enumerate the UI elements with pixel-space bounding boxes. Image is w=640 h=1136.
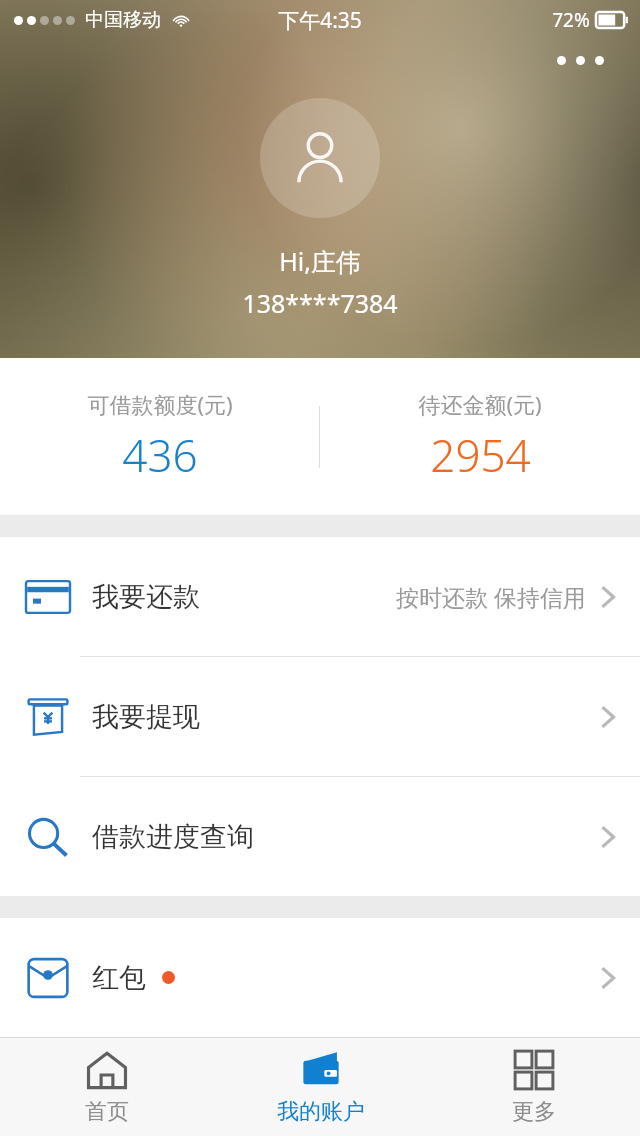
button[interactable]: 借款进度查询 [0, 777, 640, 896]
button[interactable]: 红包 [0, 918, 640, 1037]
button[interactable]: 首页 [0, 1038, 214, 1136]
staticText: 更多 [512, 1098, 556, 1126]
staticText: 我的账户 [277, 1098, 365, 1126]
staticText: 138****7384 [242, 286, 398, 320]
staticText: 我要还款 [92, 580, 200, 614]
button[interactable]: 我的账户 [214, 1038, 427, 1136]
staticText: 我要提现 [92, 700, 200, 734]
staticText: 借款进度查询 [92, 820, 254, 854]
staticText: 首页 [85, 1098, 129, 1126]
button[interactable]: More options [549, 48, 612, 73]
button[interactable]: 待还金额(元) [320, 381, 640, 493]
staticText: 按时还款 保持信用 [396, 581, 586, 612]
staticText: 436 [122, 425, 198, 485]
button[interactable]: 可借款额度(元) [0, 381, 319, 493]
staticText: 可借款额度(元) [87, 389, 233, 419]
staticText: 72% [552, 7, 590, 33]
staticText: 红包 [92, 961, 146, 995]
staticText: 2954 [430, 425, 531, 485]
staticText: 中国移动 [85, 8, 161, 32]
button[interactable]: 更多 [427, 1038, 640, 1136]
staticText: 下午4:35 [278, 6, 362, 35]
staticText: 待还金额(元) [418, 389, 542, 419]
button[interactable]: 我要提现 [0, 657, 640, 776]
staticText: Hi,庄伟 [279, 244, 361, 278]
button[interactable]: Profile avatar [260, 98, 380, 218]
button[interactable]: 我要还款 [0, 537, 640, 656]
